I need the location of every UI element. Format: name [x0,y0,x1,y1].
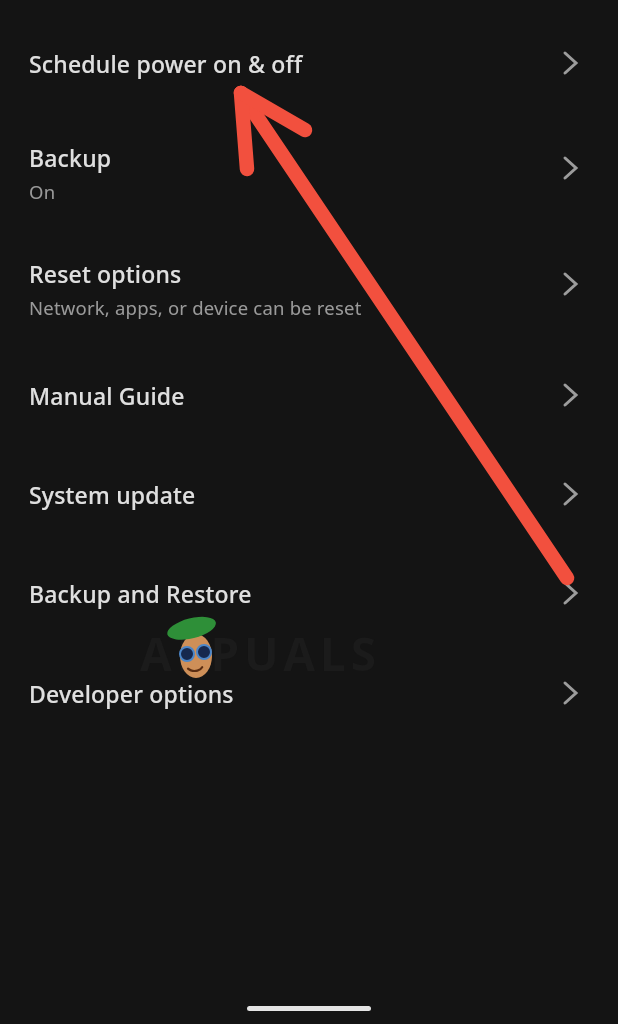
staticText: On [29,179,56,204]
staticText: Developer options [29,678,234,709]
staticText: System update [29,479,196,510]
staticText: Backup and Restore [29,578,252,609]
staticText: Reset options [29,258,182,289]
staticText: Backup [29,142,112,173]
staticText: Schedule power on & off [29,48,303,79]
staticText: APPUALS [140,622,382,682]
staticText: Manual Guide [29,380,185,411]
staticText: Network, apps, or device can be reset [29,295,362,320]
